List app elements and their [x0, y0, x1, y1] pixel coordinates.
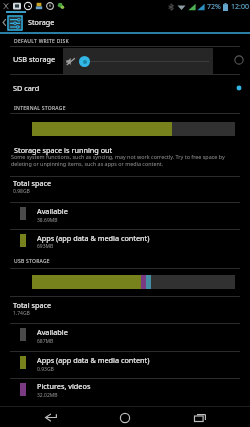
staticText: USB STORAGE: [14, 258, 50, 265]
button[interactable]: USB storage: [0, 46, 250, 74]
staticText: Some system functions, such as syncing, …: [11, 153, 225, 160]
staticText: 1.74GB: [13, 310, 30, 317]
button[interactable]: Apps (app data & media content): [0, 351, 250, 378]
button[interactable]: Total space: [0, 296, 250, 324]
button[interactable]: Available: [0, 202, 250, 229]
staticText: Storage space is running out: [14, 145, 113, 155]
staticText: Storage: [28, 17, 55, 27]
staticText: 12:00: [231, 2, 249, 12]
button[interactable]: SD card: [0, 74, 250, 101]
staticText: 0.93GB: [37, 366, 54, 373]
button[interactable]: Available: [0, 323, 250, 351]
button[interactable]: Home: [100, 407, 150, 427]
staticText: INTERNAL STORAGE: [14, 105, 66, 112]
button[interactable]: Back: [25, 407, 75, 427]
staticText: Pictures, videos: [37, 381, 91, 391]
staticText: USB storage: [13, 54, 56, 64]
staticText: Apps (app data & media content): [37, 233, 150, 243]
staticText: Available: [37, 206, 68, 216]
staticText: Apps (app data & media content): [37, 355, 150, 365]
staticText: DEFAULT WRITE DISK: [14, 38, 69, 45]
staticText: 687MB: [37, 338, 54, 345]
button[interactable]: Storage: [0, 13, 250, 32]
button[interactable]: Pictures, videos: [0, 378, 250, 406]
button[interactable]: Total space: [0, 176, 250, 202]
staticText: Total space: [13, 178, 52, 188]
staticText: 0.98GB: [13, 188, 30, 195]
staticText: Available: [37, 327, 68, 337]
button[interactable]: Recent apps: [175, 407, 225, 427]
staticText: deleting or unpinning items, such as app…: [11, 160, 164, 167]
staticText: 32.02MB: [37, 392, 58, 399]
staticText: SD card: [13, 83, 40, 93]
staticText: 72%: [207, 2, 221, 12]
staticText: Total space: [13, 300, 52, 310]
staticText: 693MB: [37, 243, 54, 250]
button[interactable]: Apps (app data & media content): [0, 229, 250, 256]
staticText: 38.69MB: [37, 217, 58, 224]
